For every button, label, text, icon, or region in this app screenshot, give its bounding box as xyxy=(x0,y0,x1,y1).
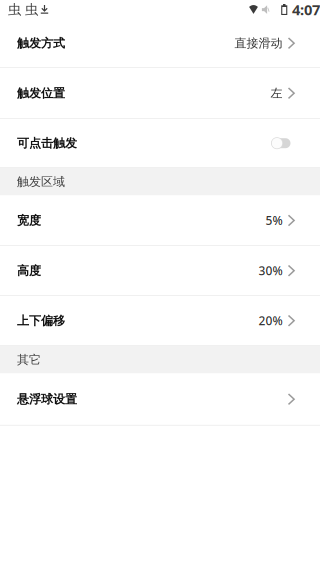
staticText: 左 xyxy=(270,86,282,100)
button[interactable]: 触发方式 xyxy=(0,19,320,68)
staticText: 触发方式 xyxy=(17,36,65,50)
button[interactable]: 宽度 xyxy=(0,195,320,246)
button[interactable]: 上下偏移 xyxy=(0,296,320,346)
staticText: 其它 xyxy=(17,352,41,367)
staticText: 虫 xyxy=(8,1,21,18)
staticText: 悬浮球设置 xyxy=(17,392,77,406)
button[interactable]: 触发位置 xyxy=(0,68,320,119)
staticText: 虫 xyxy=(25,1,38,18)
staticText: 直接滑动 xyxy=(234,36,282,50)
staticText: 可点击触发 xyxy=(17,136,77,150)
staticText: 20% xyxy=(258,313,282,329)
staticText: 触发区域 xyxy=(17,174,65,189)
staticText: 4:07 xyxy=(292,0,320,19)
button[interactable]: 悬浮球设置 xyxy=(0,373,320,425)
button[interactable]: 高度 xyxy=(0,246,320,296)
staticText: 30% xyxy=(258,263,282,279)
staticText: 触发位置 xyxy=(17,86,65,100)
staticText: 宽度 xyxy=(17,213,41,228)
staticText: 高度 xyxy=(17,263,41,278)
staticText: 上下偏移 xyxy=(17,313,65,328)
button[interactable]: 可点击触发 xyxy=(0,119,320,168)
staticText: 5% xyxy=(265,212,282,228)
